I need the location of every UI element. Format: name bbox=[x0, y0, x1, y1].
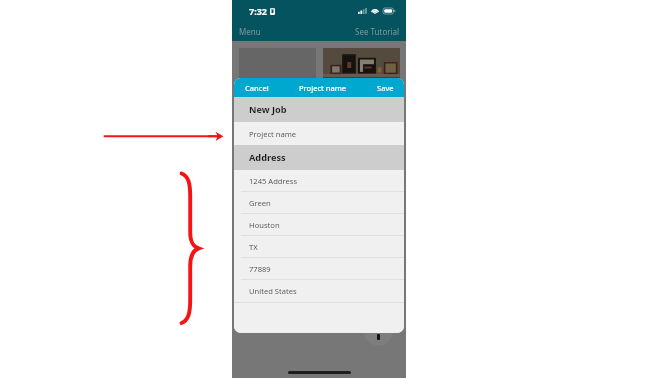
staticText: Cancel bbox=[245, 83, 269, 93]
staticText: Menu bbox=[239, 26, 261, 37]
button[interactable]: See Tutorial bbox=[355, 26, 400, 37]
staticText: Green bbox=[249, 198, 271, 208]
staticText: Project name bbox=[299, 83, 347, 93]
button[interactable]: Houston bbox=[234, 214, 404, 236]
button[interactable]: Menu bbox=[239, 26, 261, 37]
staticText: United States bbox=[249, 286, 297, 296]
button[interactable]: 77889 bbox=[234, 258, 404, 280]
staticText: Address bbox=[249, 151, 286, 164]
staticText: TX bbox=[249, 242, 258, 252]
button[interactable]: TX bbox=[234, 236, 404, 258]
button[interactable]: 1245 Address bbox=[234, 170, 404, 192]
staticText: 7:32 bbox=[249, 5, 267, 17]
staticText: See Tutorial bbox=[355, 26, 400, 37]
staticText: Save bbox=[377, 83, 394, 93]
staticText: 77889 bbox=[249, 264, 271, 274]
staticText: New Job bbox=[249, 103, 287, 116]
staticText: Houston bbox=[249, 220, 280, 230]
button[interactable]: Save bbox=[377, 83, 394, 93]
staticText: 1245 Address bbox=[249, 176, 298, 186]
button[interactable]: Project name bbox=[234, 122, 404, 145]
button[interactable]: United States bbox=[234, 280, 404, 302]
button[interactable]: Green bbox=[234, 192, 404, 214]
button[interactable]: Cancel bbox=[245, 83, 269, 93]
staticText: Project name bbox=[249, 129, 297, 139]
